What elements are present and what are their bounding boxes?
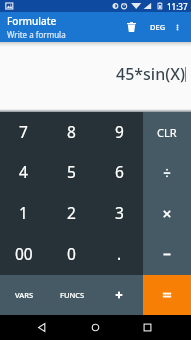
button[interactable]: Multiply bbox=[143, 193, 191, 234]
button[interactable]: Equals bbox=[143, 275, 191, 315]
button[interactable]: Delete bbox=[121, 14, 142, 40]
staticText: 3 bbox=[115, 202, 124, 223]
staticText: . bbox=[117, 243, 122, 264]
staticText: 9 bbox=[115, 121, 124, 142]
button[interactable]: 5 bbox=[47, 152, 95, 193]
staticText: 5 bbox=[67, 161, 76, 182]
button[interactable]: More options bbox=[168, 14, 186, 40]
button[interactable]: 1 bbox=[0, 193, 47, 234]
button[interactable]: 8 bbox=[47, 112, 95, 152]
button[interactable]: Back bbox=[30, 315, 55, 340]
button[interactable]: 3 bbox=[95, 193, 143, 234]
button[interactable]: FUNCS bbox=[47, 275, 95, 315]
staticText: 00 bbox=[15, 243, 33, 264]
staticText: Formulate bbox=[7, 14, 57, 28]
button[interactable]: Home bbox=[83, 315, 108, 340]
button[interactable]: 6 bbox=[95, 152, 143, 193]
button[interactable]: DEG bbox=[146, 14, 169, 40]
staticText: 7 bbox=[19, 121, 28, 142]
button[interactable]: Minus bbox=[143, 234, 191, 275]
staticText: CLR bbox=[157, 125, 177, 140]
staticText: 2 bbox=[67, 202, 76, 223]
staticText: FUNCS bbox=[60, 290, 85, 300]
button[interactable]: VARS bbox=[0, 275, 47, 315]
staticText: 11:37 bbox=[167, 1, 188, 12]
staticText: VARS bbox=[15, 290, 34, 300]
button[interactable]: CLR bbox=[143, 112, 191, 152]
button[interactable]: 00 bbox=[0, 234, 47, 275]
staticText: Write a formula bbox=[7, 29, 66, 40]
button[interactable]: 4 bbox=[0, 152, 47, 193]
staticText: 4 bbox=[19, 161, 28, 182]
button[interactable]: . bbox=[95, 234, 143, 275]
staticText: 0 bbox=[67, 243, 76, 264]
staticText: 1 bbox=[19, 202, 28, 223]
button[interactable]: 7 bbox=[0, 112, 47, 152]
staticText: DEG bbox=[150, 22, 166, 32]
button[interactable]: 2 bbox=[47, 193, 95, 234]
staticText: 45*sin(X) bbox=[116, 63, 185, 85]
button[interactable]: Recents bbox=[135, 315, 160, 340]
staticText: 8 bbox=[67, 121, 76, 142]
button[interactable]: 9 bbox=[95, 112, 143, 152]
button[interactable]: Divide bbox=[143, 152, 191, 193]
staticText: 6 bbox=[115, 161, 124, 182]
button[interactable]: 0 bbox=[47, 234, 95, 275]
button[interactable]: Add bbox=[95, 275, 143, 315]
